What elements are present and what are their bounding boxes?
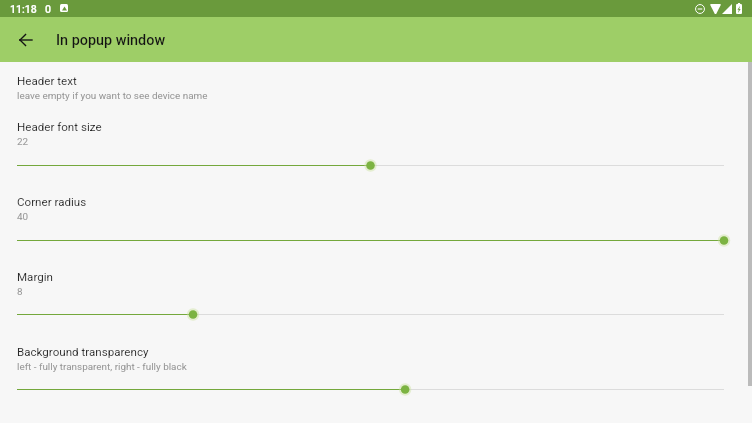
button[interactable] xyxy=(0,307,752,321)
staticText: left - fully transparent, right - fully … xyxy=(17,361,187,373)
staticText: Corner radius xyxy=(17,195,87,209)
button[interactable] xyxy=(0,382,752,396)
button[interactable]: Corner radius xyxy=(0,195,752,227)
button[interactable]: Back xyxy=(8,17,44,62)
staticText: 22 xyxy=(17,136,29,148)
staticText: 8 xyxy=(17,286,23,298)
staticText: Header font size xyxy=(17,120,102,134)
button[interactable]: Margin xyxy=(0,270,752,302)
button[interactable]: Header font size xyxy=(0,120,752,152)
staticText: In popup window xyxy=(56,32,166,49)
button[interactable]: Background transparency xyxy=(0,345,752,377)
staticText: Margin xyxy=(17,270,53,284)
button[interactable] xyxy=(0,158,752,172)
staticText: Background transparency xyxy=(17,345,149,359)
staticText: 40 xyxy=(17,211,29,223)
staticText: leave empty if you want to see device na… xyxy=(17,90,208,102)
staticText: 11:18 xyxy=(10,3,37,15)
staticText: Header text xyxy=(17,74,77,88)
button[interactable] xyxy=(0,233,752,247)
staticText: 0 xyxy=(45,3,52,15)
button[interactable]: Header text xyxy=(0,74,752,106)
